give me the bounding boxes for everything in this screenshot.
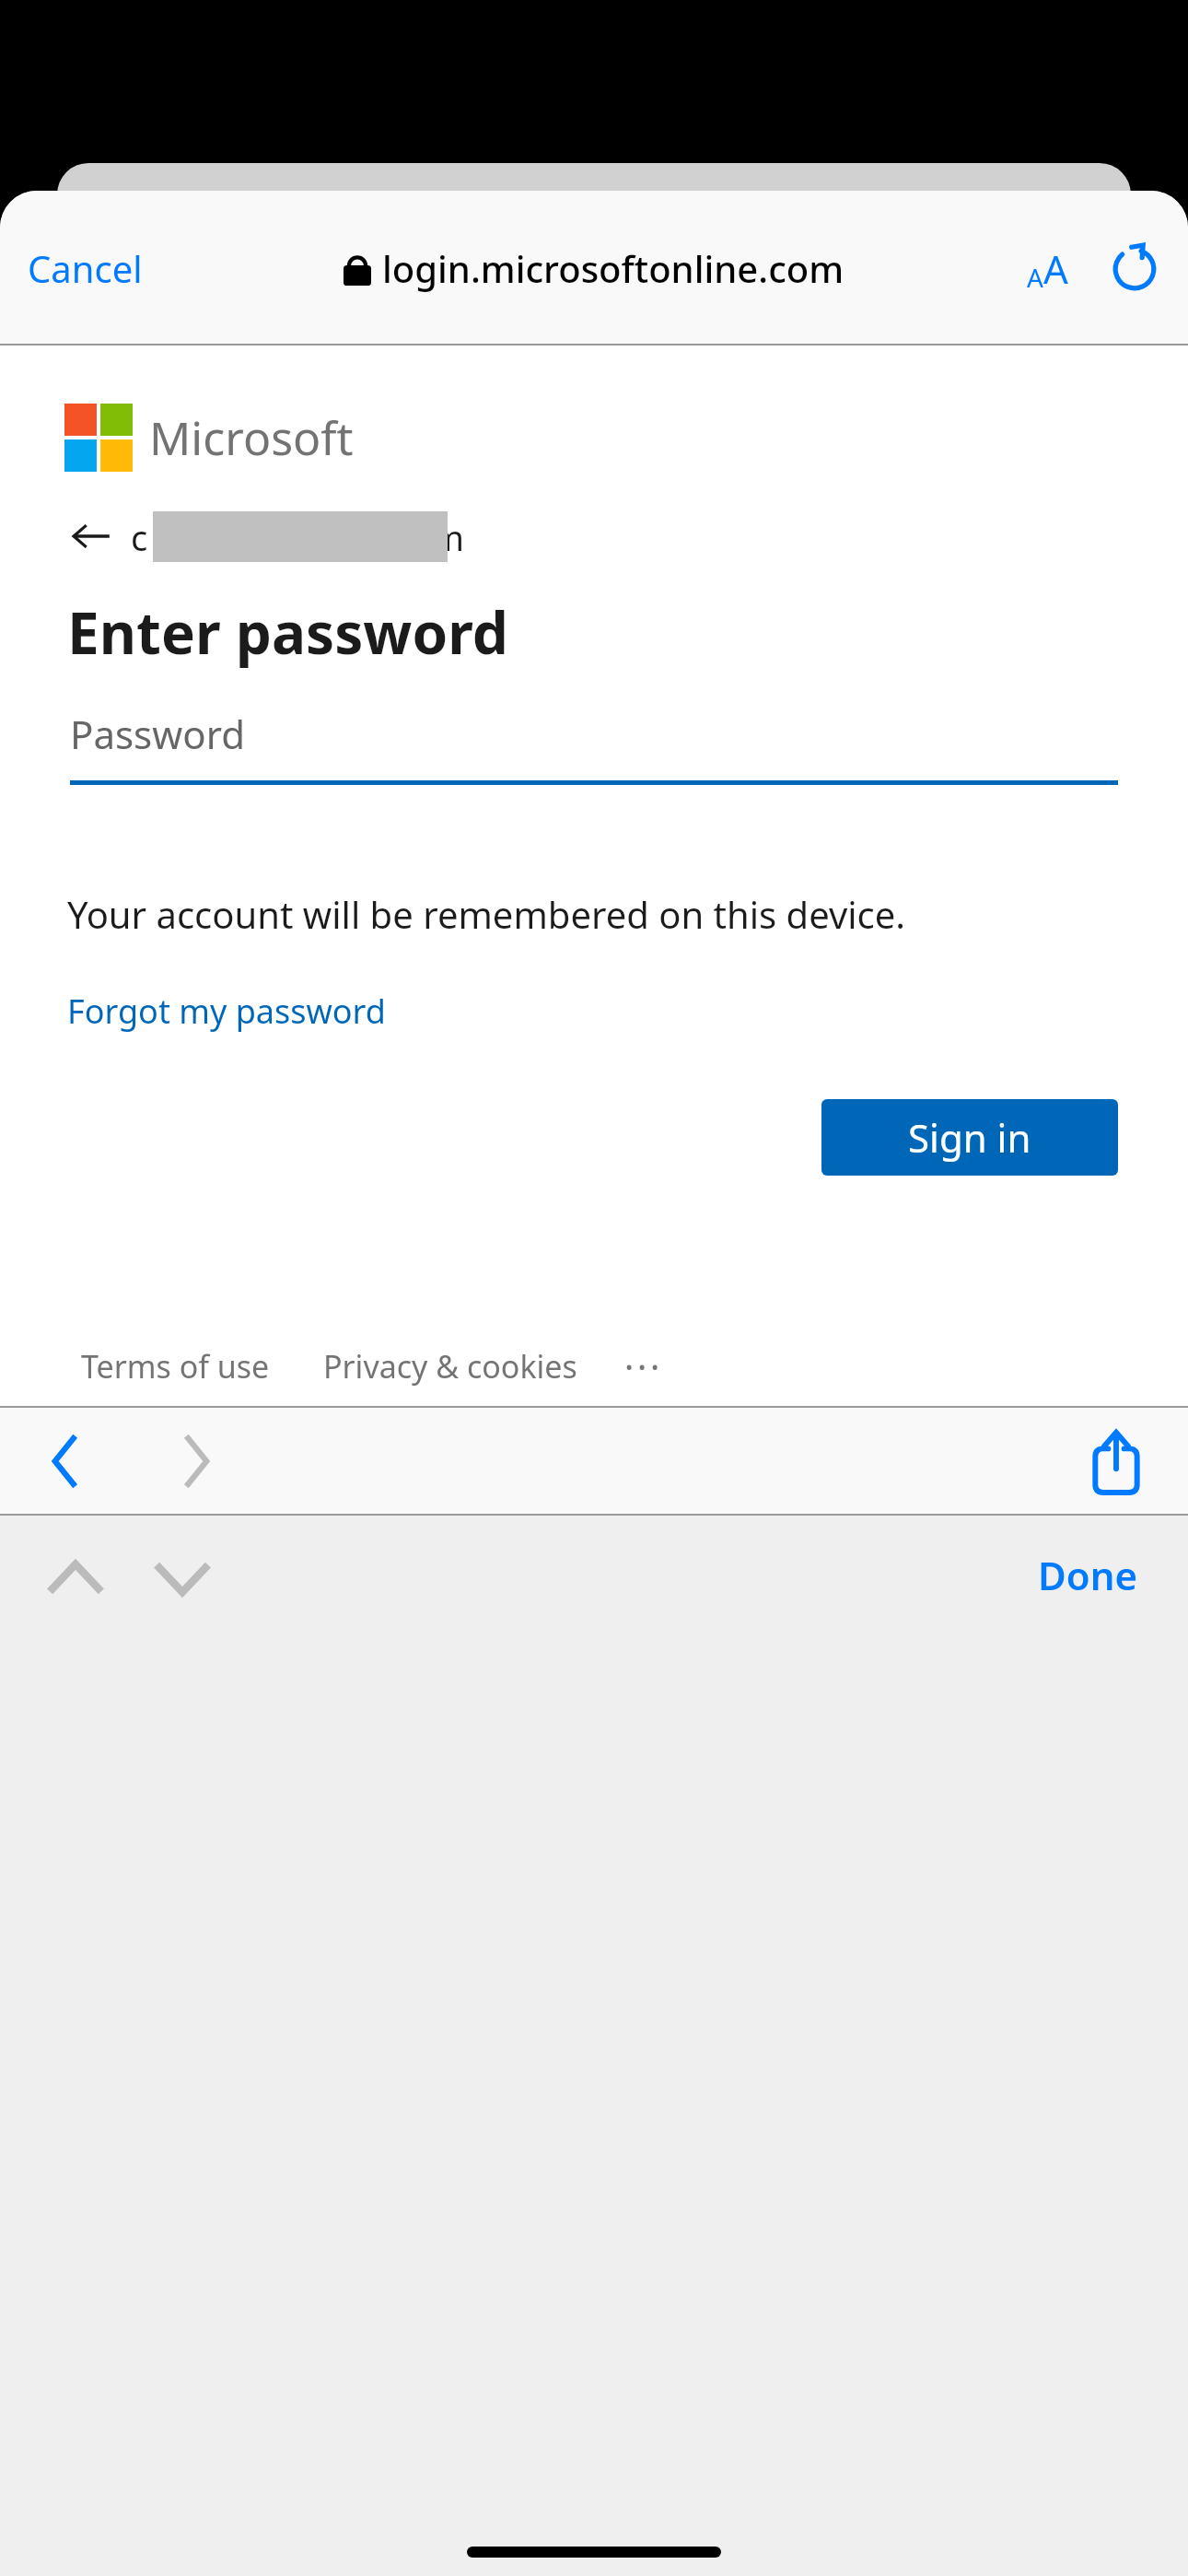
- button[interactable]: More options: [620, 1343, 665, 1389]
- button[interactable]: Previous field: [41, 1543, 111, 1613]
- button[interactable]: Next field: [147, 1543, 217, 1613]
- button[interactable]: Forgot my password: [67, 989, 386, 1034]
- button[interactable]: Done: [1018, 1536, 1159, 1614]
- staticText: Your account will be remembered on this …: [67, 889, 906, 939]
- staticText: Microsoft: [149, 406, 354, 469]
- staticText: • • •: [625, 1352, 659, 1380]
- button[interactable]: Back: [64, 509, 118, 563]
- button[interactable]: Back: [24, 1419, 109, 1504]
- button[interactable]: Terms of use: [81, 1345, 270, 1388]
- staticText: login.microsoftonline.com: [382, 243, 844, 293]
- staticText: Enter password: [67, 593, 508, 671]
- button[interactable]: Reload page: [1098, 232, 1171, 306]
- staticText: c .com: [131, 513, 465, 561]
- button[interactable]: Password: [70, 708, 1118, 785]
- button[interactable]: Forward: [153, 1419, 238, 1504]
- button[interactable]: Privacy & cookies: [323, 1345, 577, 1388]
- button[interactable]: Cancel: [6, 230, 165, 306]
- button[interactable]: Share: [1074, 1419, 1159, 1504]
- staticText: Sign in: [908, 1111, 1031, 1164]
- staticText: A: [1043, 242, 1068, 295]
- staticText: Password: [70, 708, 245, 760]
- button[interactable]: Page settings, text size: [1012, 228, 1083, 310]
- button[interactable]: Sign in: [821, 1099, 1118, 1176]
- staticText: Done: [1038, 1549, 1138, 1601]
- staticText: A: [1027, 260, 1043, 295]
